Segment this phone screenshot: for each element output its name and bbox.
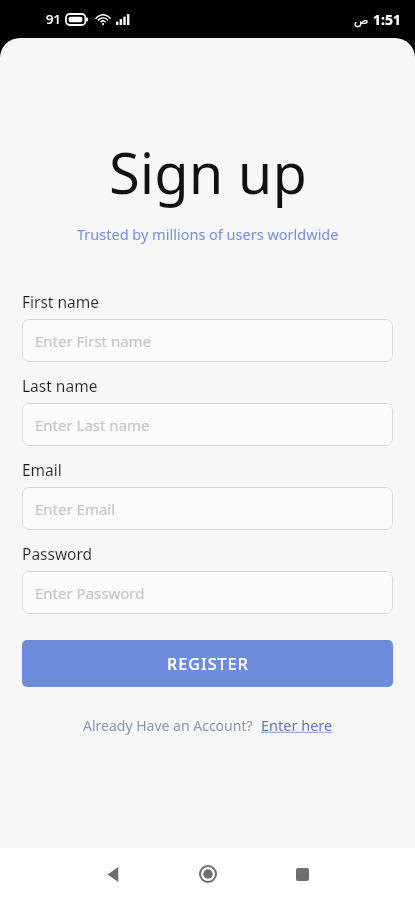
staticText: Enter First name — [35, 331, 152, 351]
button[interactable]: REGISTER — [22, 640, 393, 687]
button[interactable]: Recents — [285, 857, 319, 891]
button[interactable]: Back — [96, 857, 130, 891]
staticText: Trusted by millions of users worldwide — [77, 224, 339, 244]
button[interactable]: Enter here — [261, 715, 333, 735]
staticText: Enter Password — [35, 583, 145, 603]
staticText: Last name — [22, 375, 98, 396]
staticText: Enter Email — [35, 499, 116, 519]
staticText: First name — [22, 291, 100, 312]
staticText: Enter Last name — [35, 415, 150, 435]
staticText: Password — [22, 543, 93, 564]
staticText: 1:51 — [373, 10, 401, 29]
button[interactable]: Home — [191, 857, 225, 891]
staticText: Already Have an Account? — [83, 716, 253, 735]
staticText: Sign up — [109, 134, 307, 210]
button[interactable]: Enter First name — [22, 319, 393, 362]
button[interactable]: Enter Password — [22, 571, 393, 614]
staticText: Enter here — [261, 715, 333, 735]
staticText: 91 — [46, 10, 61, 28]
button[interactable]: Enter Last name — [22, 403, 393, 446]
staticText: ص — [354, 13, 369, 27]
staticText: Email — [22, 459, 62, 480]
button[interactable]: Enter Email — [22, 487, 393, 530]
staticText: REGISTER — [167, 653, 249, 675]
